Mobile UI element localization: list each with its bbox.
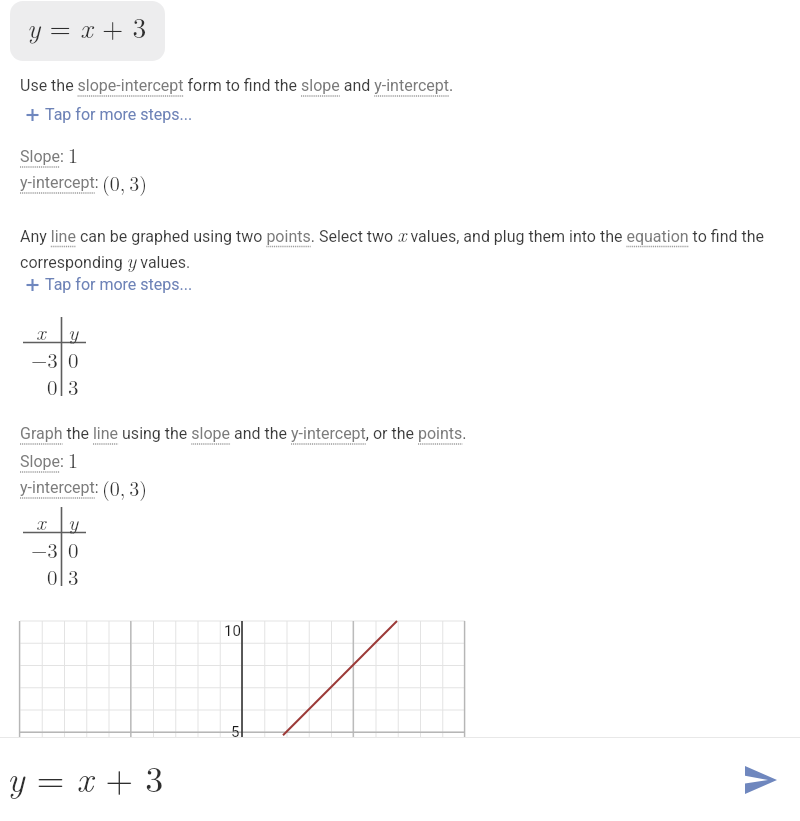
staticText: 3 xyxy=(68,561,79,591)
staticText: 0 xyxy=(68,534,79,564)
staticText: −3 xyxy=(31,534,58,564)
staticText: 10 xyxy=(224,622,241,640)
staticText: −3 xyxy=(31,344,58,374)
staticText: 5 xyxy=(231,723,240,741)
staticText: 1 xyxy=(68,445,78,473)
staticText: Tap for more steps... xyxy=(45,105,193,124)
button[interactable]: Tap for more steps... xyxy=(24,105,193,124)
staticText: y-intercept: xyxy=(20,173,99,192)
button[interactable]: Tap for more steps... xyxy=(24,275,193,294)
staticText: 3 xyxy=(68,371,79,401)
staticText: x xyxy=(36,506,46,536)
staticText: 0 xyxy=(47,561,58,591)
staticText: Any line can be graphed using two points… xyxy=(20,219,772,274)
staticText: (0, 3) xyxy=(102,473,148,501)
staticText: x xyxy=(36,316,46,346)
staticText: 0 xyxy=(47,371,58,401)
staticText: Graph the line using the slope and the y… xyxy=(20,424,467,443)
staticText: y = x + 3 xyxy=(27,7,147,46)
staticText: Tap for more steps... xyxy=(45,275,193,294)
staticText: (0, 3) xyxy=(102,168,148,196)
staticText: 0 xyxy=(68,344,79,374)
staticText: Slope: xyxy=(20,452,64,471)
staticText: y xyxy=(68,316,79,346)
staticText: y-intercept: xyxy=(20,478,99,497)
button[interactable]: Submit equation xyxy=(737,756,785,804)
staticText: y = x + 3 xyxy=(7,751,164,802)
staticText: 1 xyxy=(68,140,78,168)
staticText: y xyxy=(68,506,79,536)
staticText: Use the slope-intercept form to find the… xyxy=(20,76,454,95)
button[interactable]: y = x + 3 xyxy=(10,1,165,61)
staticText: Slope: xyxy=(20,147,64,166)
